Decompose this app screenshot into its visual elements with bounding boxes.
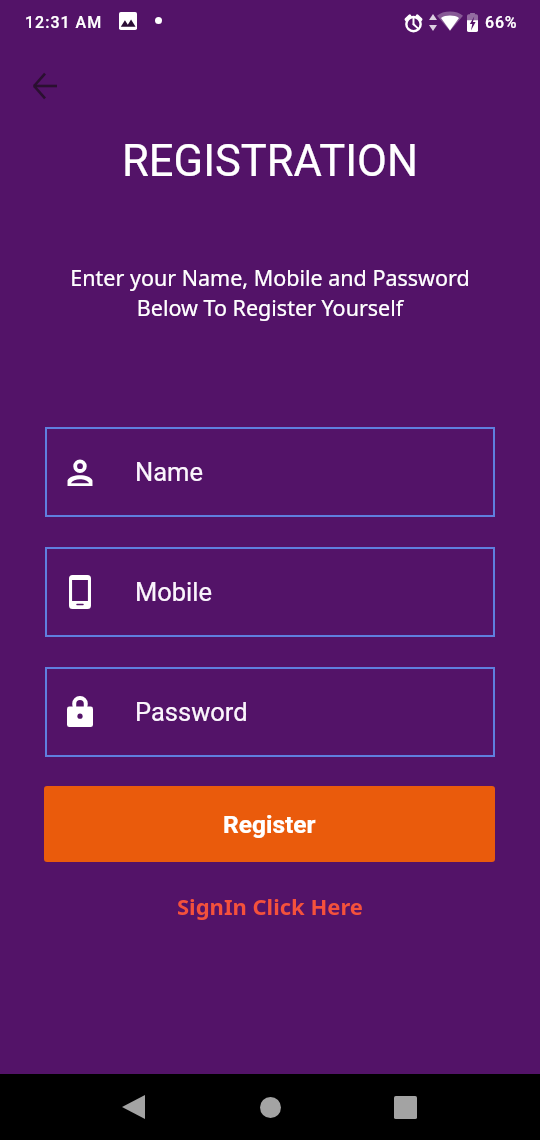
staticText: Mobile: [135, 577, 213, 607]
staticText: Password: [135, 697, 248, 727]
button[interactable]: Home: [225, 1074, 315, 1140]
button[interactable]: Back: [88, 1074, 178, 1140]
staticText: Register: [223, 810, 316, 839]
button[interactable]: Mobile: [45, 547, 495, 637]
staticText: 66%: [485, 13, 518, 32]
staticText: SignIn Click Here: [177, 891, 363, 921]
staticText: Name: [135, 457, 203, 487]
button[interactable]: Password: [45, 667, 495, 757]
staticText: 12:31 AM: [25, 13, 103, 32]
button[interactable]: Register: [44, 786, 495, 862]
button[interactable]: SignIn Click Here: [163, 884, 377, 928]
staticText: REGISTRATION: [0, 136, 540, 187]
button[interactable]: Name: [45, 427, 495, 517]
button[interactable]: Recent apps: [360, 1074, 450, 1140]
staticText: Enter your Name, Mobile and Password Bel…: [0, 263, 540, 322]
button[interactable]: Back: [21, 62, 69, 110]
